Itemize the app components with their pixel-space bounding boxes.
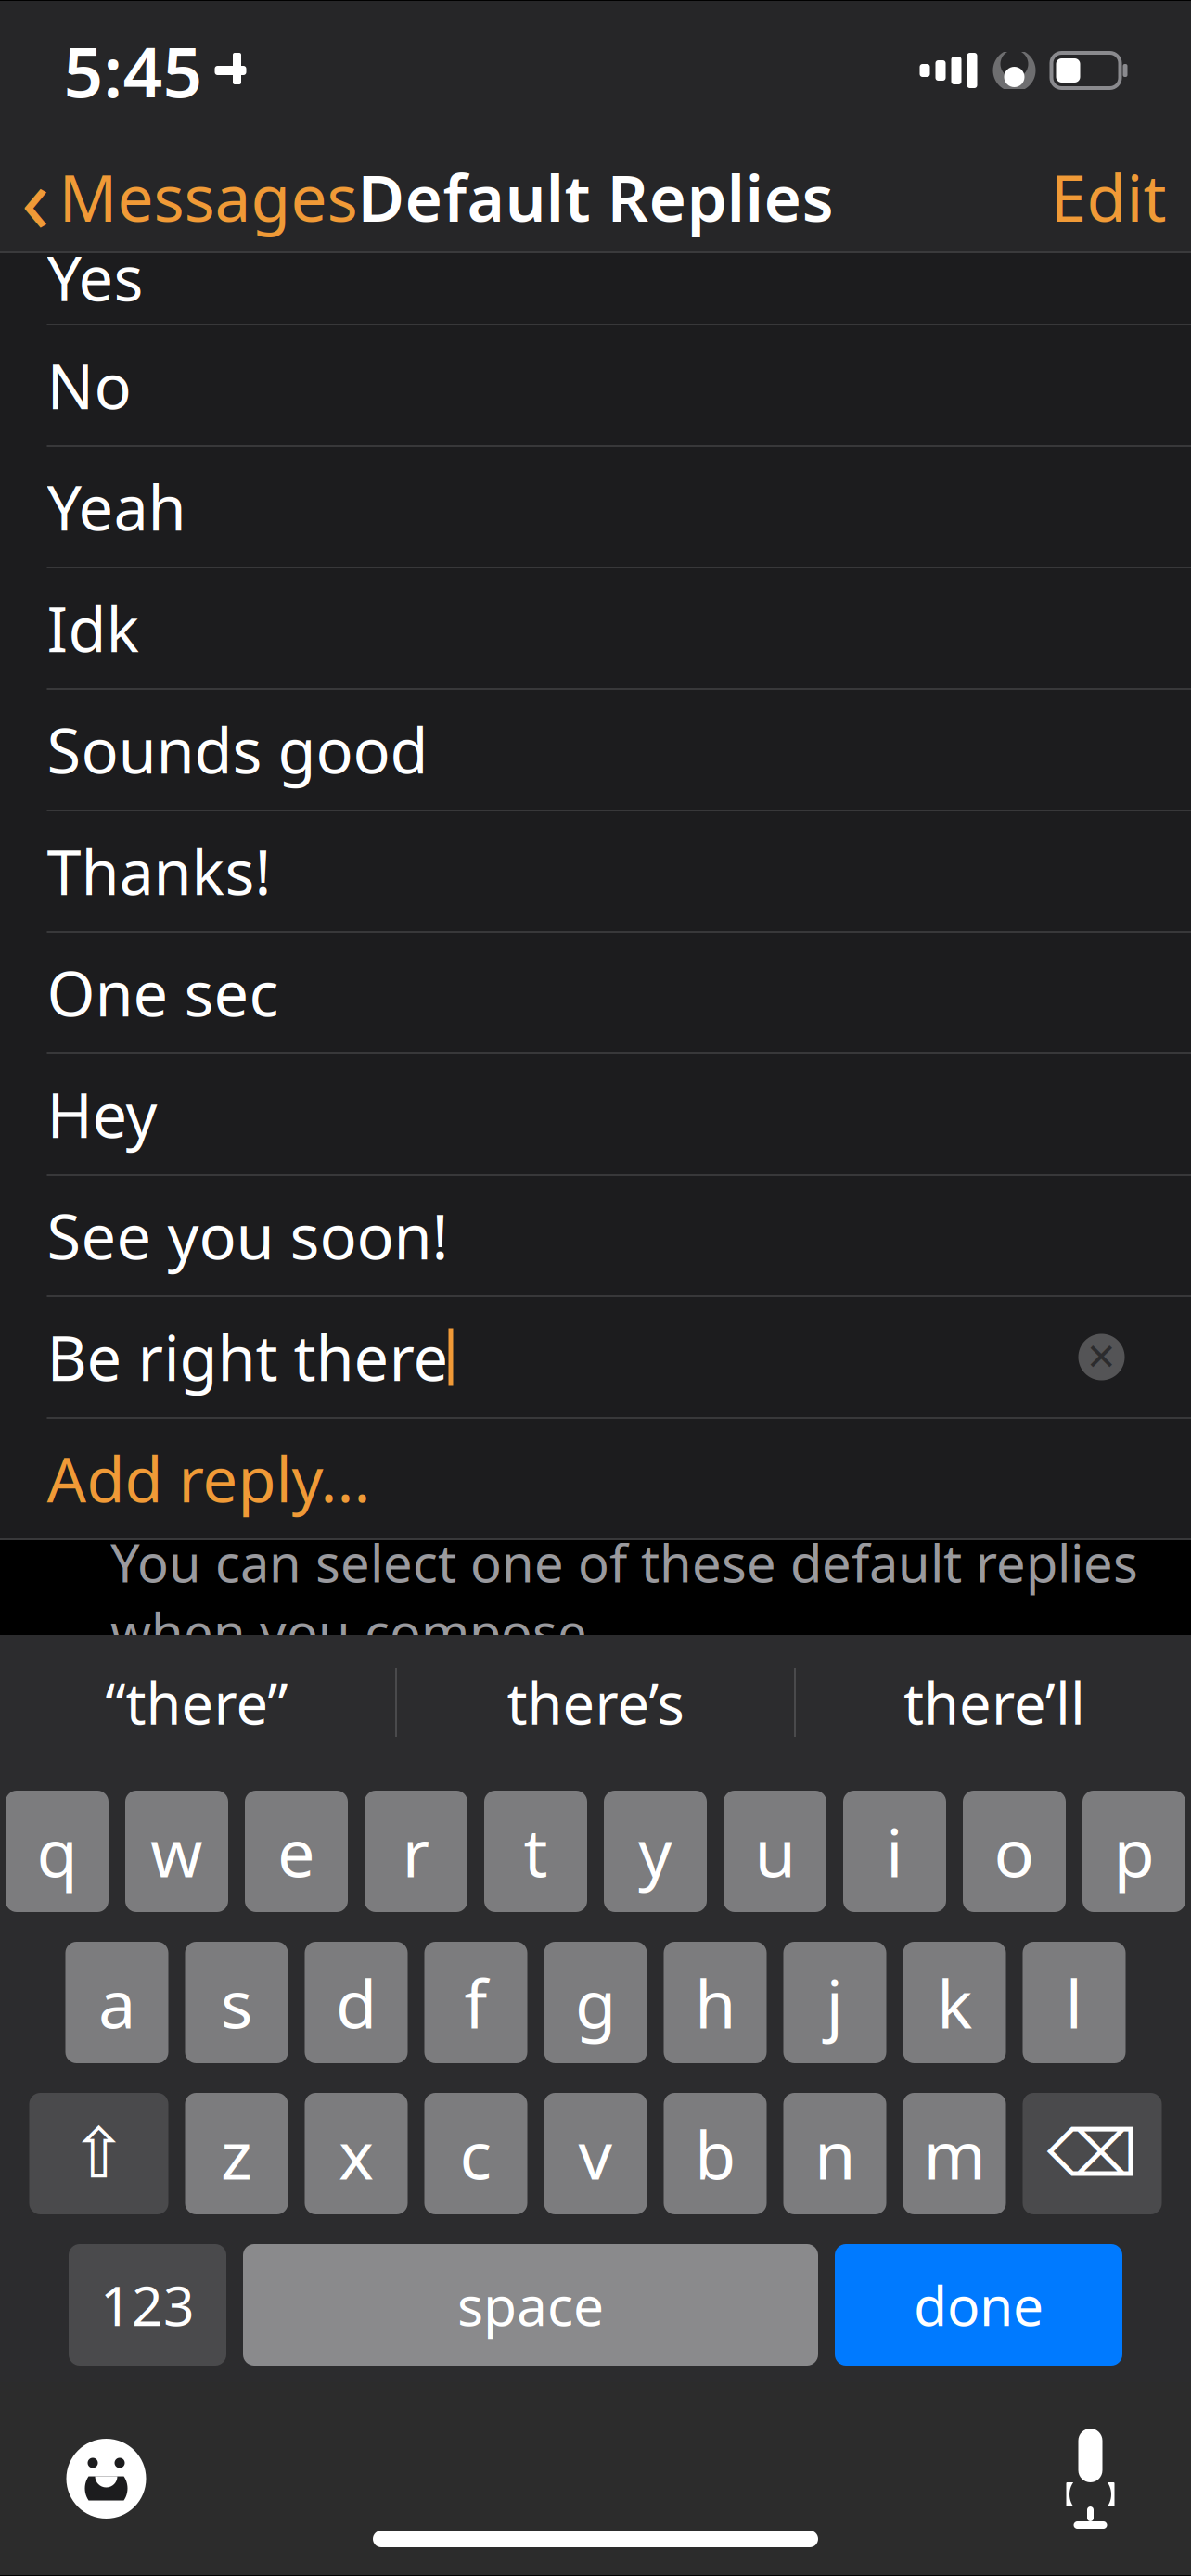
button[interactable]: d: [305, 1942, 408, 2063]
button[interactable]: m: [903, 2093, 1006, 2214]
staticText: a: [98, 1958, 135, 2047]
button[interactable]: Idk: [0, 568, 1191, 690]
button[interactable]: b: [664, 2093, 767, 2214]
button[interactable]: done: [835, 2244, 1122, 2366]
button[interactable]: c: [424, 2093, 527, 2214]
staticText: s: [221, 1958, 252, 2047]
staticText: No: [47, 344, 131, 426]
button[interactable]: Add reply...: [0, 1419, 1191, 1540]
button[interactable]: Emoji keyboard: [0, 2436, 149, 2521]
button[interactable]: o: [963, 1791, 1066, 1912]
staticText: x: [339, 2109, 374, 2198]
button[interactable]: Thanks!: [0, 811, 1191, 933]
button[interactable]: w: [125, 1791, 228, 1912]
staticText: q: [37, 1807, 77, 1896]
staticText: ⌫: [1047, 2117, 1138, 2190]
staticText: f: [464, 1958, 487, 2047]
staticText: Sounds good: [47, 709, 428, 791]
staticText: h: [695, 1958, 736, 2047]
staticText: g: [575, 1958, 616, 2047]
staticText: One sec: [47, 952, 279, 1034]
button[interactable]: Delete: [1023, 2093, 1162, 2214]
staticText: r: [402, 1807, 430, 1896]
button[interactable]: z: [185, 2093, 288, 2214]
staticText: ✕: [1086, 1336, 1117, 1378]
staticText: t: [524, 1807, 548, 1896]
staticText: d: [336, 1958, 377, 2047]
staticText: “there”: [105, 1665, 288, 1740]
staticText: there’ll: [903, 1665, 1085, 1740]
button[interactable]: t: [484, 1791, 587, 1912]
staticText: Thanks!: [47, 830, 271, 912]
button[interactable]: p: [1082, 1791, 1185, 1912]
button[interactable]: n: [783, 2093, 886, 2214]
staticText: See you soon!: [47, 1195, 448, 1277]
button[interactable]: x: [305, 2093, 408, 2214]
staticText: n: [814, 2109, 855, 2198]
staticText: done: [914, 2269, 1044, 2341]
button[interactable]: k: [903, 1942, 1006, 2063]
button[interactable]: One sec: [0, 933, 1191, 1054]
button[interactable]: a: [65, 1942, 168, 2063]
staticText: You can select one of these default repl…: [110, 1528, 1138, 1666]
button[interactable]: No: [0, 325, 1191, 447]
staticText: Default Replies: [358, 154, 833, 239]
staticText: m: [923, 2109, 986, 2198]
staticText: space: [457, 2269, 604, 2341]
button[interactable]: q: [6, 1791, 109, 1912]
staticText: y: [638, 1807, 672, 1896]
button[interactable]: u: [724, 1791, 826, 1912]
button[interactable]: Hey: [0, 1054, 1191, 1176]
button[interactable]: ‹: [0, 121, 358, 272]
button[interactable]: v: [544, 2093, 647, 2214]
button[interactable]: i: [843, 1791, 946, 1912]
button[interactable]: Yeah: [0, 447, 1191, 568]
staticText: p: [1114, 1807, 1154, 1896]
staticText: z: [221, 2109, 252, 2198]
button[interactable]: f: [424, 1942, 527, 2063]
staticText: v: [578, 2109, 613, 2198]
button[interactable]: l: [1023, 1942, 1126, 2063]
button[interactable]: there’s: [397, 1635, 794, 1770]
staticText: 123: [100, 2269, 195, 2341]
staticText: ⇧: [70, 2114, 128, 2193]
staticText: b: [695, 2109, 736, 2198]
staticText: l: [1065, 1958, 1083, 2047]
staticText: i: [886, 1807, 903, 1896]
staticText: Add reply...: [47, 1437, 371, 1520]
staticText: there’s: [507, 1665, 684, 1740]
staticText: e: [277, 1807, 315, 1896]
staticText: 5:45: [64, 24, 203, 116]
staticText: c: [460, 2109, 492, 2198]
staticText: Yeah: [47, 466, 186, 548]
button[interactable]: r: [365, 1791, 467, 1912]
button[interactable]: j: [783, 1942, 886, 2063]
button[interactable]: s: [185, 1942, 288, 2063]
staticText: Edit: [1050, 154, 1166, 239]
button[interactable]: Sounds good: [0, 690, 1191, 811]
button[interactable]: Be right there: [0, 1297, 1191, 1419]
button[interactable]: 123: [69, 2244, 226, 2366]
button[interactable]: e: [245, 1791, 348, 1912]
button[interactable]: Clear text: [1076, 1331, 1127, 1383]
button[interactable]: Shift: [29, 2093, 168, 2214]
staticText: ‹: [21, 134, 50, 259]
staticText: Messages: [59, 154, 358, 239]
button[interactable]: Edit: [1050, 141, 1191, 252]
button[interactable]: y: [604, 1791, 707, 1912]
staticText: Hey: [47, 1073, 157, 1155]
staticText: o: [994, 1807, 1035, 1896]
button[interactable]: Yes: [0, 253, 1191, 325]
button[interactable]: h: [664, 1942, 767, 2063]
button[interactable]: “there”: [0, 1635, 395, 1770]
staticText: w: [150, 1807, 203, 1896]
button[interactable]: Dictation: [1063, 2425, 1191, 2532]
button[interactable]: space: [243, 2244, 818, 2366]
button[interactable]: there’ll: [796, 1635, 1191, 1770]
staticText: u: [755, 1807, 795, 1896]
staticText: Idk: [47, 587, 140, 669]
staticText: Yes: [47, 236, 143, 318]
button[interactable]: See you soon!: [0, 1176, 1191, 1297]
button[interactable]: g: [544, 1942, 647, 2063]
staticText: Be right there: [47, 1316, 448, 1398]
